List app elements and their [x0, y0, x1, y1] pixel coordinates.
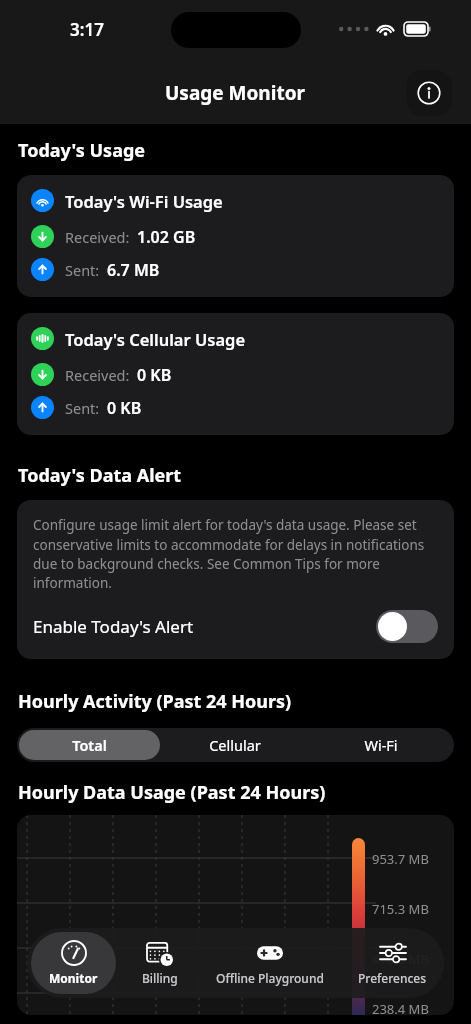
button[interactable]: Today's Cellular Usage: [17, 313, 454, 435]
button[interactable]: Billing: [124, 932, 196, 994]
staticText: Hourly Data Usage (Past 24 Hours): [18, 780, 326, 805]
staticText: Received:: [65, 227, 130, 247]
staticText: Preferences: [358, 970, 427, 986]
staticText: Enable Today's Alert: [33, 615, 194, 638]
staticText: 715.3 MB: [372, 900, 429, 918]
staticText: Received:: [65, 365, 130, 385]
staticText: Configure usage limit alert for today's …: [33, 516, 438, 592]
staticText: 238.4 MB: [372, 1000, 429, 1015]
staticText: 3:17: [70, 18, 104, 41]
staticText: 953.7 MB: [372, 850, 429, 868]
button[interactable]: Cellular: [164, 730, 306, 760]
button[interactable]: Wi-Fi: [310, 730, 452, 760]
staticText: Offline Playground: [216, 970, 324, 986]
staticText: Today's Data Alert: [18, 463, 182, 488]
staticText: Usage Monitor: [165, 80, 306, 106]
staticText: 0 KB: [107, 397, 142, 419]
staticText: 476.8 MB: [372, 950, 429, 968]
staticText: Sent:: [65, 398, 100, 418]
button[interactable]: Monitor: [31, 932, 116, 994]
staticText: Billing: [142, 970, 178, 986]
button[interactable]: Offline Playground: [204, 932, 336, 994]
staticText: Monitor: [49, 970, 98, 986]
staticText: 6.7 MB: [107, 259, 160, 281]
button[interactable]: Total: [19, 730, 160, 760]
staticText: Sent:: [65, 260, 100, 280]
button[interactable]: Information: [406, 70, 452, 116]
staticText: Wi-Fi: [364, 735, 398, 755]
staticText: Cellular: [209, 735, 261, 755]
button[interactable]: Preferences: [344, 932, 440, 994]
staticText: 1.02 GB: [137, 226, 196, 248]
staticText: Total: [72, 735, 107, 755]
staticText: Today's Cellular Usage: [65, 328, 246, 350]
staticText: 0 KB: [137, 364, 172, 386]
staticText: Hourly Activity (Past 24 Hours): [18, 689, 292, 714]
staticText: Today's Wi-Fi Usage: [65, 190, 223, 212]
button[interactable]: Enable Today's Alert: [33, 610, 438, 643]
button[interactable]: Today's Wi-Fi Usage: [17, 175, 454, 297]
staticText: Today's Usage: [18, 138, 146, 163]
